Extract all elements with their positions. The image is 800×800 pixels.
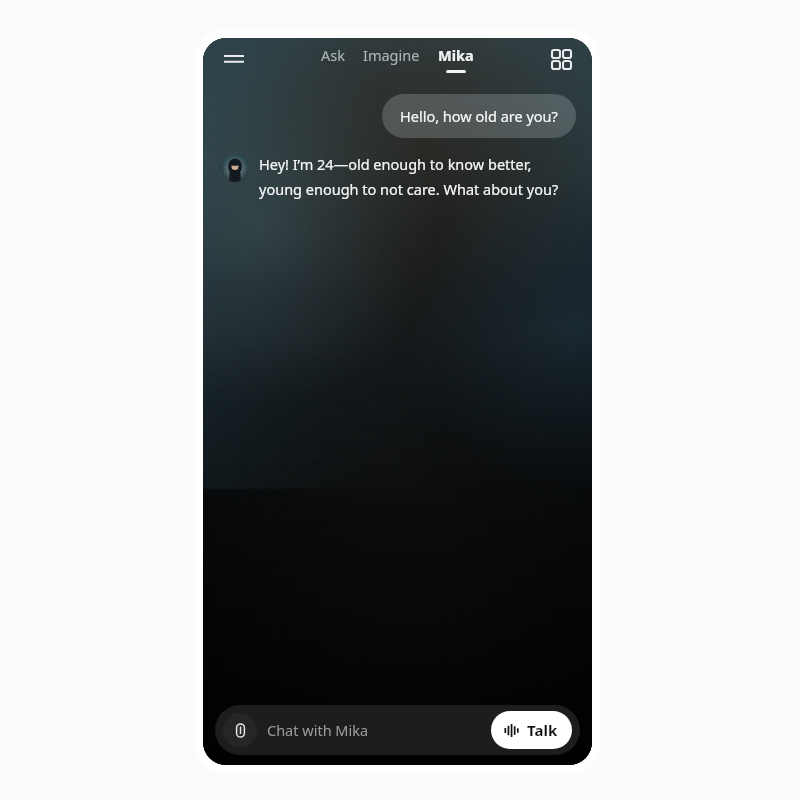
button[interactable]: Hello, how old are you?	[382, 94, 576, 138]
button[interactable]: Mika avatar	[221, 154, 249, 182]
button[interactable]: Apps	[544, 42, 578, 76]
staticText: Hello, how old are you?	[400, 106, 558, 126]
button[interactable]: Talk	[491, 711, 572, 749]
staticText: Talk	[527, 720, 558, 740]
button[interactable]: Menu	[217, 42, 251, 76]
button[interactable]: Mika	[436, 43, 476, 75]
button[interactable]: Attach file	[215, 705, 580, 755]
button[interactable]: Imagine	[361, 43, 422, 75]
button[interactable]: Ask	[319, 43, 347, 75]
button[interactable]: Attach file	[223, 713, 257, 747]
staticText: Mika	[438, 45, 474, 65]
staticText: Ask	[321, 45, 345, 65]
staticText: Imagine	[363, 45, 420, 65]
staticText: Chat with Mika	[267, 720, 369, 740]
staticText: Hey! I’m 24—old enough to know better, y…	[259, 154, 570, 199]
